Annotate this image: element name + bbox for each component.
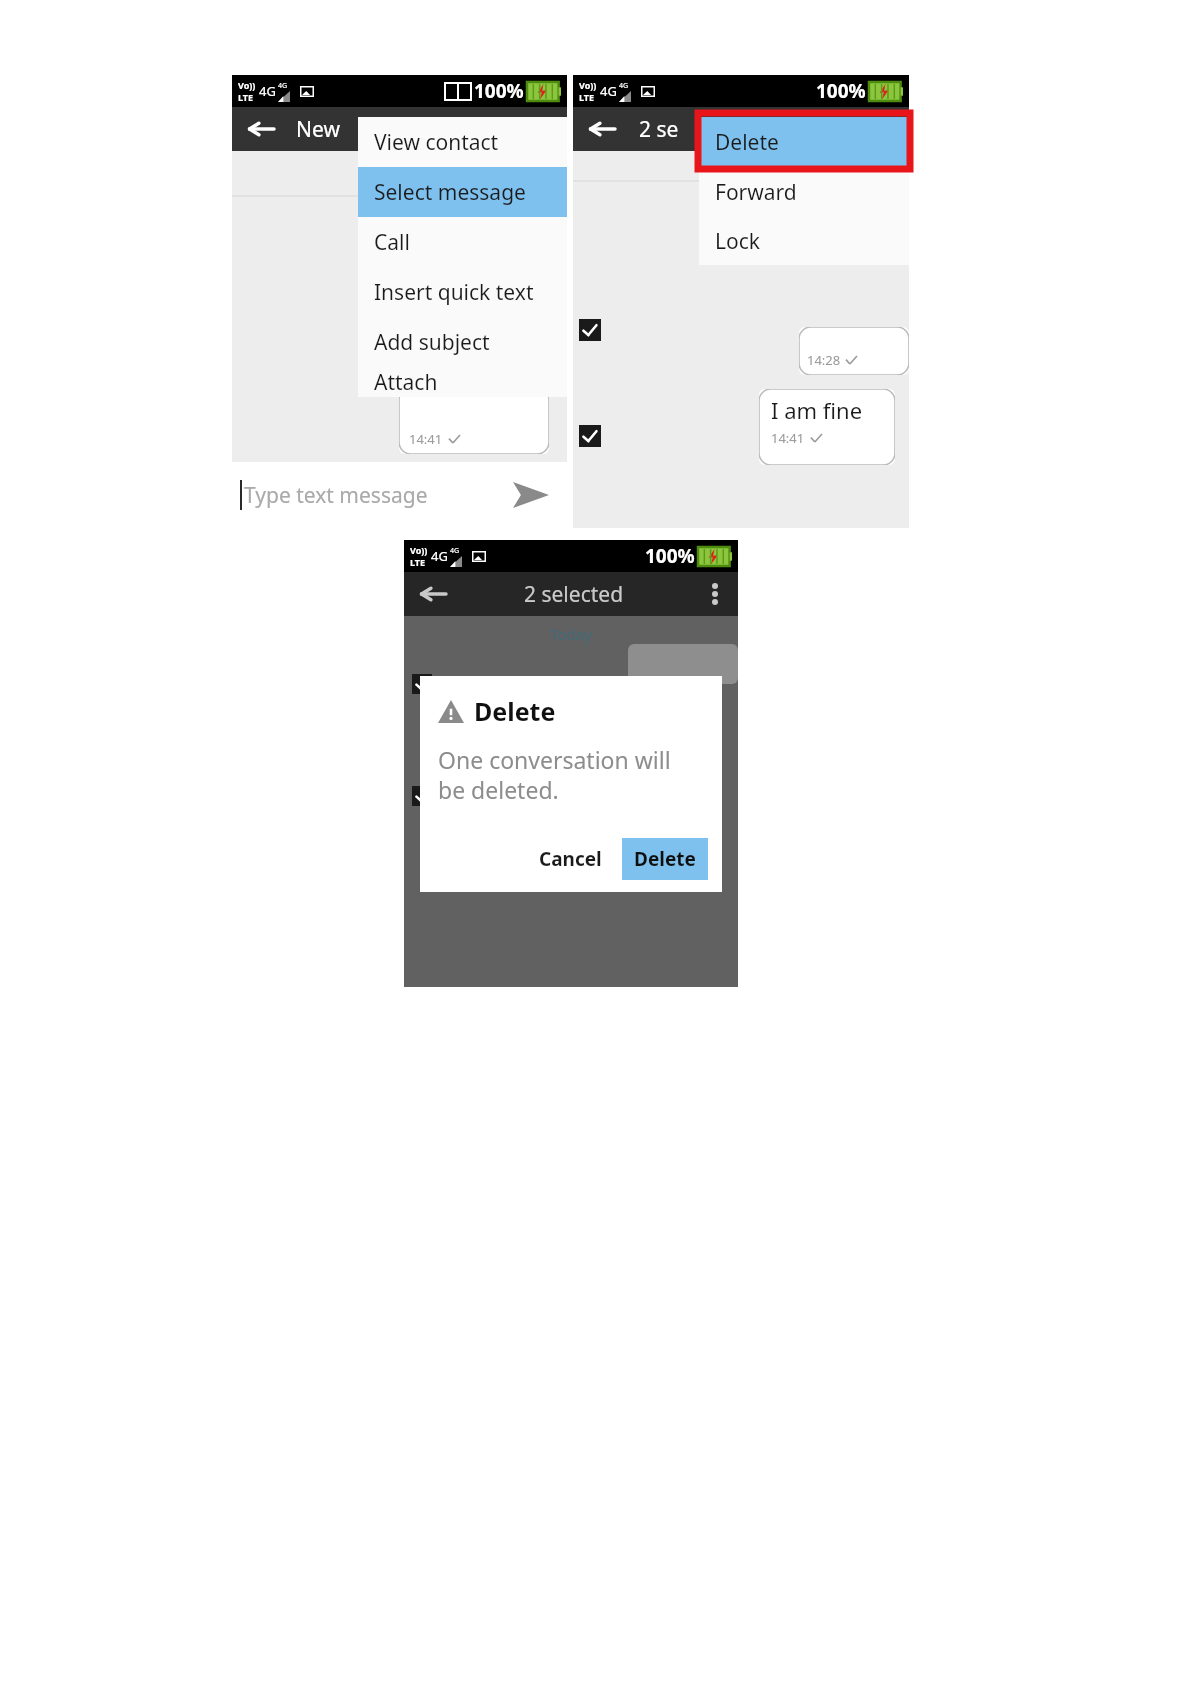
button[interactable]: Select message: [358, 167, 567, 217]
staticText: Today: [550, 624, 592, 644]
button[interactable]: Back: [587, 114, 617, 144]
staticText: Vo)): [579, 79, 597, 91]
staticText: 2 selected: [524, 580, 624, 609]
staticText: Add subject: [374, 328, 490, 357]
staticText: Vo)): [410, 544, 428, 556]
button[interactable]: Delete: [622, 838, 708, 880]
staticText: 2 se: [639, 115, 679, 144]
staticText: 100%: [645, 543, 695, 569]
button[interactable]: Send: [509, 473, 553, 517]
staticText: 4G: [431, 547, 448, 565]
staticText: LTE: [579, 91, 595, 103]
staticText: 100%: [474, 78, 524, 104]
staticText: Cancel: [539, 846, 602, 872]
staticText: LTE: [410, 556, 426, 568]
staticText: LTE: [238, 91, 254, 103]
staticText: 4G: [600, 82, 617, 100]
staticText: 4G: [259, 82, 276, 100]
button[interactable]: View contact: [358, 117, 567, 167]
staticText: 14:28: [807, 351, 841, 369]
staticText: 4G: [619, 81, 629, 91]
button[interactable]: Add subject: [358, 317, 567, 367]
staticText: Attach: [374, 368, 438, 397]
staticText: Forward: [715, 178, 797, 207]
button[interactable]: Forward: [699, 167, 909, 217]
button[interactable]: Call: [358, 217, 567, 267]
button[interactable]: [579, 425, 601, 447]
staticText: Delete: [474, 694, 556, 728]
staticText: Type text message: [244, 481, 428, 510]
staticText: Vo)): [238, 79, 256, 91]
staticText: View contact: [374, 128, 499, 157]
staticText: 100%: [816, 78, 866, 104]
button[interactable]: Back: [246, 114, 276, 144]
button[interactable]: [412, 786, 432, 806]
staticText: Delete: [634, 846, 696, 872]
button[interactable]: Insert quick text: [358, 267, 567, 317]
staticText: 4G: [450, 546, 460, 556]
button[interactable]: [579, 319, 601, 341]
button[interactable]: Delete: [699, 117, 909, 167]
button[interactable]: Attach: [358, 367, 567, 397]
staticText: I am fine: [771, 395, 863, 425]
button[interactable]: [412, 674, 432, 694]
staticText: Insert quick text: [374, 278, 534, 307]
button[interactable]: Cancel: [529, 840, 612, 878]
staticText: Delete: [715, 128, 779, 157]
staticText: 14:41: [409, 430, 443, 448]
staticText: One conversation will be deleted.: [438, 744, 671, 805]
staticText: 4G: [278, 81, 288, 91]
staticText: Lock: [715, 227, 761, 256]
button[interactable]: Lock: [699, 217, 909, 265]
button[interactable]: More options: [700, 579, 730, 609]
staticText: Call: [374, 228, 410, 257]
staticText: New: [296, 115, 340, 144]
button[interactable]: Back: [418, 579, 448, 609]
staticText: Select message: [374, 178, 526, 207]
staticText: 14:41: [771, 429, 805, 447]
